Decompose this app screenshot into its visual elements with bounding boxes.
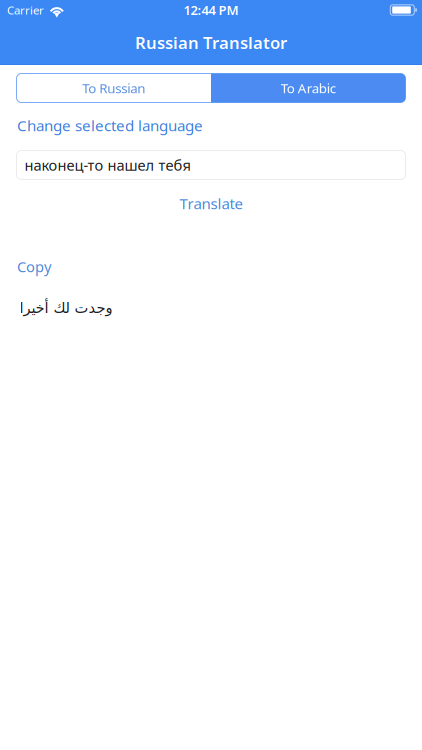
- staticText: Carrier: [7, 2, 44, 18]
- staticText: To Russian: [82, 79, 145, 97]
- staticText: Translate: [179, 193, 242, 214]
- button[interactable]: To Arabic: [211, 73, 405, 102]
- button[interactable]: Translate: [0, 195, 422, 211]
- staticText: Copy: [17, 256, 51, 276]
- button[interactable]: Copy: [0, 258, 422, 274]
- staticText: Russian Translator: [135, 31, 287, 54]
- staticText: наконец-то нашел тебя: [24, 155, 190, 175]
- staticText: To Arabic: [281, 79, 336, 97]
- staticText: وجدت لك أخيرا: [19, 299, 112, 317]
- button[interactable]: Change selected language: [0, 117, 422, 133]
- staticText: 12:44 PM: [183, 1, 238, 19]
- button[interactable]: To Russian: [16, 73, 211, 102]
- staticText: Change selected language: [17, 115, 203, 136]
